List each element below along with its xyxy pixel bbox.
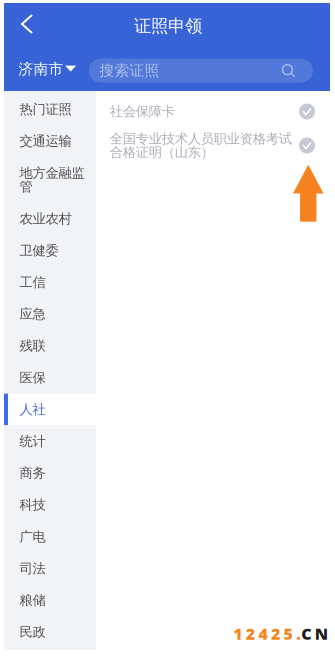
button[interactable]: 广电 (4, 521, 96, 553)
staticText: CN (301, 623, 328, 644)
staticText: 广电 (19, 528, 45, 545)
staticText: 12425. (233, 623, 301, 644)
staticText: 统计 (19, 433, 45, 449)
staticText: 热门证照 (19, 101, 71, 117)
staticText: 地方金融监管 (19, 165, 84, 195)
staticText: 应急 (19, 306, 45, 322)
button[interactable]: 济南市 (4, 59, 89, 83)
staticText: 医保 (19, 369, 45, 386)
button[interactable]: 民政 (4, 616, 96, 648)
button[interactable]: 商务 (4, 457, 96, 489)
button[interactable]: 热门证照 (4, 93, 96, 125)
staticText: 社会保障卡 (110, 103, 175, 120)
button[interactable]: 医保 (4, 362, 96, 394)
button[interactable]: 统计 (4, 425, 96, 457)
staticText: 科技 (19, 497, 45, 513)
staticText: 济南市 (19, 60, 64, 78)
staticText: 证照申领 (134, 15, 202, 37)
button[interactable]: 残联 (4, 330, 96, 362)
button[interactable]: 社会保障卡 (96, 98, 330, 125)
button[interactable]: 科技 (4, 489, 96, 521)
button[interactable]: 全国专业技术人员职业资格考试合格证明（山东） (96, 125, 330, 166)
staticText: 残联 (19, 338, 45, 354)
staticText: 卫健委 (19, 242, 58, 259)
button[interactable]: 人社 (4, 394, 96, 425)
staticText: 搜索证照 (99, 62, 159, 80)
staticText: 交通运输 (19, 133, 71, 149)
button[interactable]: 地方金融监管 (4, 157, 96, 203)
staticText: 农业农村 (19, 210, 71, 227)
staticText: 工信 (19, 274, 45, 290)
button[interactable]: 卫健委 (4, 235, 96, 266)
button[interactable]: 搜索证照 (89, 59, 313, 83)
button[interactable]: 工信 (4, 266, 96, 298)
staticText: 民政 (19, 624, 45, 640)
button[interactable]: 应急 (4, 298, 96, 330)
staticText: 人社 (19, 401, 45, 418)
button[interactable]: Back (5, 2, 49, 46)
staticText: 商务 (19, 465, 45, 481)
staticText: 粮储 (19, 592, 45, 608)
staticText: 司法 (19, 560, 45, 577)
button[interactable]: 农业农村 (4, 203, 96, 235)
button[interactable]: 粮储 (4, 584, 96, 616)
button[interactable]: 交通运输 (4, 125, 96, 157)
button[interactable]: 司法 (4, 553, 96, 584)
staticText: 全国专业技术人员职业资格考试合格证明（山东） (110, 130, 292, 160)
